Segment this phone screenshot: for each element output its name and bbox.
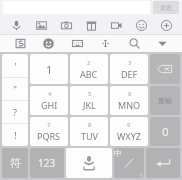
button[interactable]: Space / Voice input xyxy=(66,148,112,178)
button[interactable]: 7 xyxy=(30,117,68,146)
button[interactable]: Move cursor xyxy=(96,35,114,52)
staticText: GHI xyxy=(41,99,58,111)
staticText: MNO xyxy=(118,99,141,111)
button[interactable]: Video xyxy=(107,16,125,34)
button[interactable]: More xyxy=(157,16,175,34)
staticText: JKL xyxy=(83,99,96,111)
staticText: 123 xyxy=(38,156,56,170)
staticText: 7 xyxy=(47,121,51,129)
staticText: 4 xyxy=(48,90,52,98)
button[interactable]: " xyxy=(2,78,28,100)
staticText: 重输 xyxy=(158,96,172,105)
button[interactable]: Hide keyboard xyxy=(153,35,171,52)
staticText: 8 xyxy=(88,121,92,129)
staticText: ? xyxy=(13,106,17,118)
button[interactable]: 符 xyxy=(2,148,28,178)
button[interactable]: 9 xyxy=(110,117,148,146)
button[interactable]: 3 xyxy=(110,54,148,84)
button[interactable]: Keyboard layout xyxy=(68,35,86,52)
button[interactable]: 5 xyxy=(70,86,108,115)
button[interactable]: 1 xyxy=(30,54,68,84)
button[interactable]: Camera xyxy=(57,16,75,34)
button[interactable]: 中 xyxy=(114,148,144,178)
button[interactable]: Emoji xyxy=(132,16,150,34)
button[interactable]: 4 xyxy=(30,86,68,115)
staticText: ' xyxy=(14,60,17,72)
button[interactable]: Enter xyxy=(146,148,180,178)
staticText: 发送 xyxy=(160,4,172,12)
button[interactable]: 重输 xyxy=(150,86,180,115)
staticText: PQRS xyxy=(37,130,61,142)
staticText: 英 xyxy=(139,172,144,178)
staticText: ABC xyxy=(80,68,98,80)
button[interactable]: ? xyxy=(2,101,28,123)
staticText: 0 xyxy=(162,124,169,139)
button[interactable]: Expression xyxy=(39,35,57,52)
staticText: ! xyxy=(14,129,17,141)
staticText: 中 xyxy=(114,148,122,158)
button[interactable]: Backspace xyxy=(150,54,180,84)
button[interactable]: Sogou logo xyxy=(11,35,29,52)
staticText: 2 xyxy=(87,59,91,67)
button[interactable]: Photos xyxy=(32,16,50,34)
staticText: 9 xyxy=(127,121,131,129)
staticText: TUV xyxy=(81,130,98,142)
staticText: " xyxy=(13,83,17,95)
button[interactable]: ' xyxy=(2,54,28,77)
staticText: WXYZ xyxy=(117,130,141,142)
button[interactable]: 2 xyxy=(70,54,108,84)
button[interactable]: Voice message xyxy=(7,16,25,34)
button[interactable]: 6 xyxy=(110,86,148,115)
button[interactable]: Search xyxy=(125,35,143,52)
staticText: 符 xyxy=(10,156,21,170)
staticText: 1 xyxy=(46,62,53,77)
button[interactable]: ! xyxy=(2,124,28,146)
button[interactable]: Gift xyxy=(82,16,100,34)
staticText: 3 xyxy=(128,59,132,67)
button[interactable]: 发送 xyxy=(153,1,179,14)
button[interactable]: 0 xyxy=(150,117,180,146)
staticText: DEF xyxy=(121,68,138,80)
staticText: 5 xyxy=(88,90,92,98)
staticText: 6 xyxy=(128,90,132,98)
button[interactable]: 123 xyxy=(30,148,64,178)
button[interactable]: 8 xyxy=(70,117,108,146)
